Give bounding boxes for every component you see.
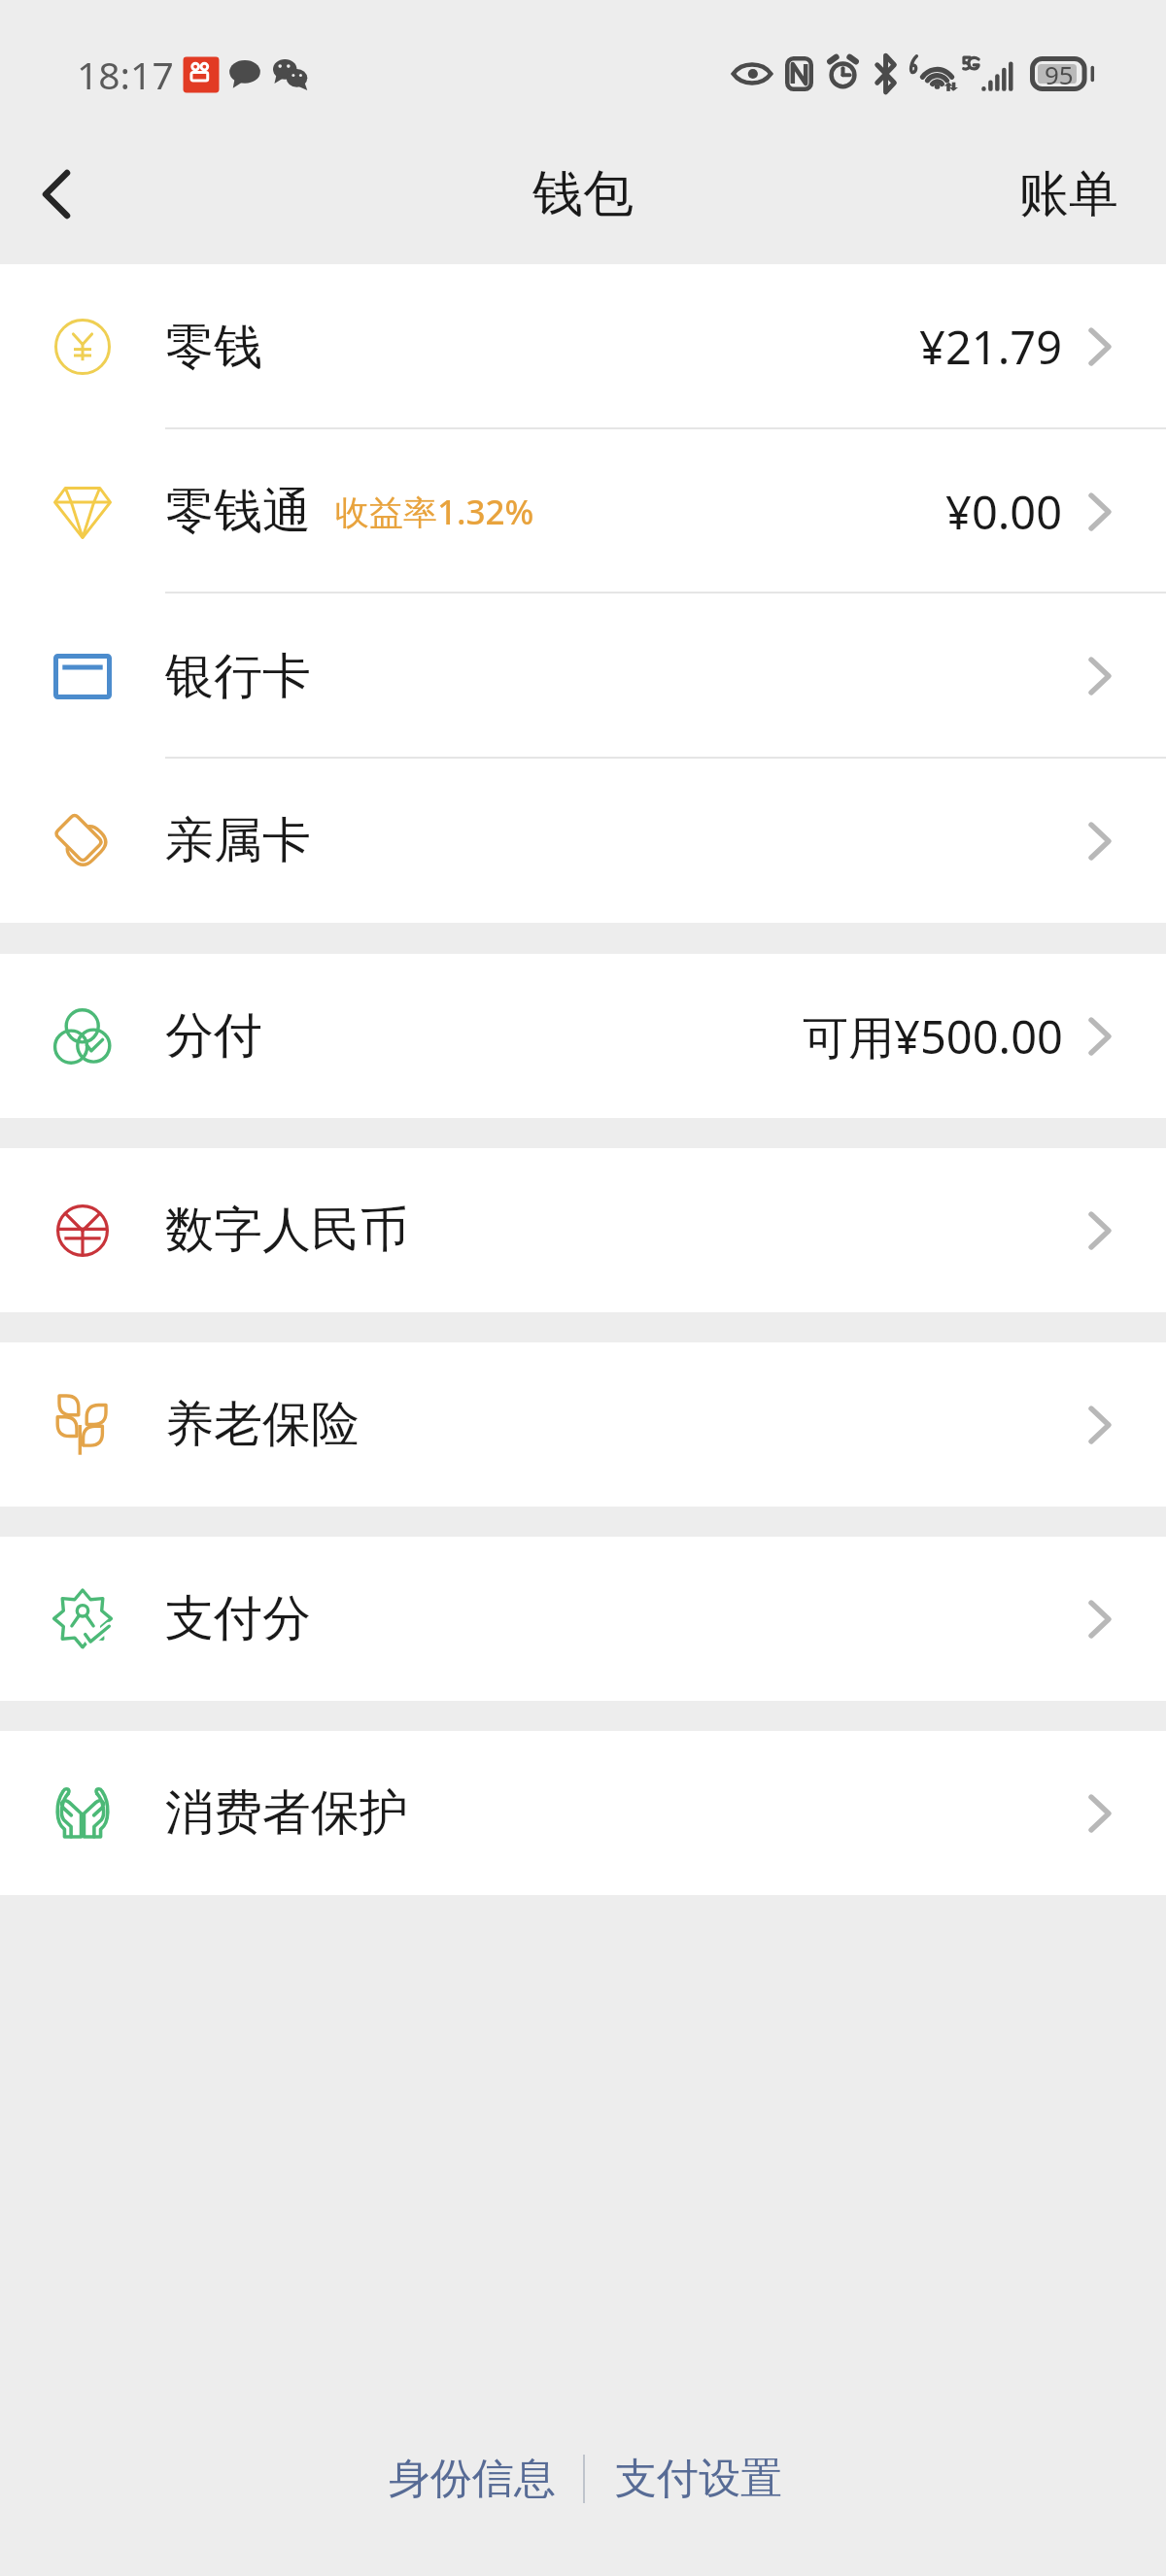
staticText: 钱包: [532, 162, 634, 226]
staticText: 数字人民币: [165, 1200, 408, 1261]
staticText: 亲属卡: [165, 810, 311, 871]
button[interactable]: 数字人民币: [0, 1148, 1166, 1312]
staticText: 支付设置: [615, 2453, 782, 2505]
button[interactable]: 养老保险: [0, 1342, 1166, 1507]
staticText: ¥21.79: [919, 316, 1063, 378]
staticText: 消费者保护: [165, 1782, 408, 1844]
staticText: 可用¥500.00: [803, 1005, 1063, 1068]
button[interactable]: 支付设置: [585, 2441, 794, 2517]
staticText: 18:17: [77, 49, 174, 100]
button[interactable]: 亲属卡: [0, 759, 1166, 923]
button[interactable]: 身份信息: [373, 2441, 583, 2517]
staticText: ¥0.00: [945, 481, 1063, 543]
staticText: 身份信息: [389, 2453, 556, 2505]
button[interactable]: 支付分: [0, 1537, 1166, 1701]
button[interactable]: 零钱通: [0, 429, 1166, 593]
staticText: 收益率1.32%: [335, 489, 534, 535]
staticText: 银行卡: [165, 646, 311, 707]
button[interactable]: 账单: [977, 124, 1166, 264]
staticText: 养老保险: [165, 1394, 360, 1455]
staticText: 零钱通: [165, 481, 311, 542]
staticText: 支付分: [165, 1588, 311, 1649]
button[interactable]: 分付: [0, 954, 1166, 1118]
button[interactable]: 零钱: [0, 264, 1166, 429]
button[interactable]: 消费者保护: [0, 1731, 1166, 1895]
staticText: 账单: [1019, 163, 1118, 225]
button[interactable]: Back: [0, 124, 113, 264]
staticText: 分付: [165, 1005, 262, 1067]
button[interactable]: 银行卡: [0, 593, 1166, 759]
staticText: 95: [1045, 57, 1074, 91]
staticText: 零钱: [165, 317, 262, 378]
